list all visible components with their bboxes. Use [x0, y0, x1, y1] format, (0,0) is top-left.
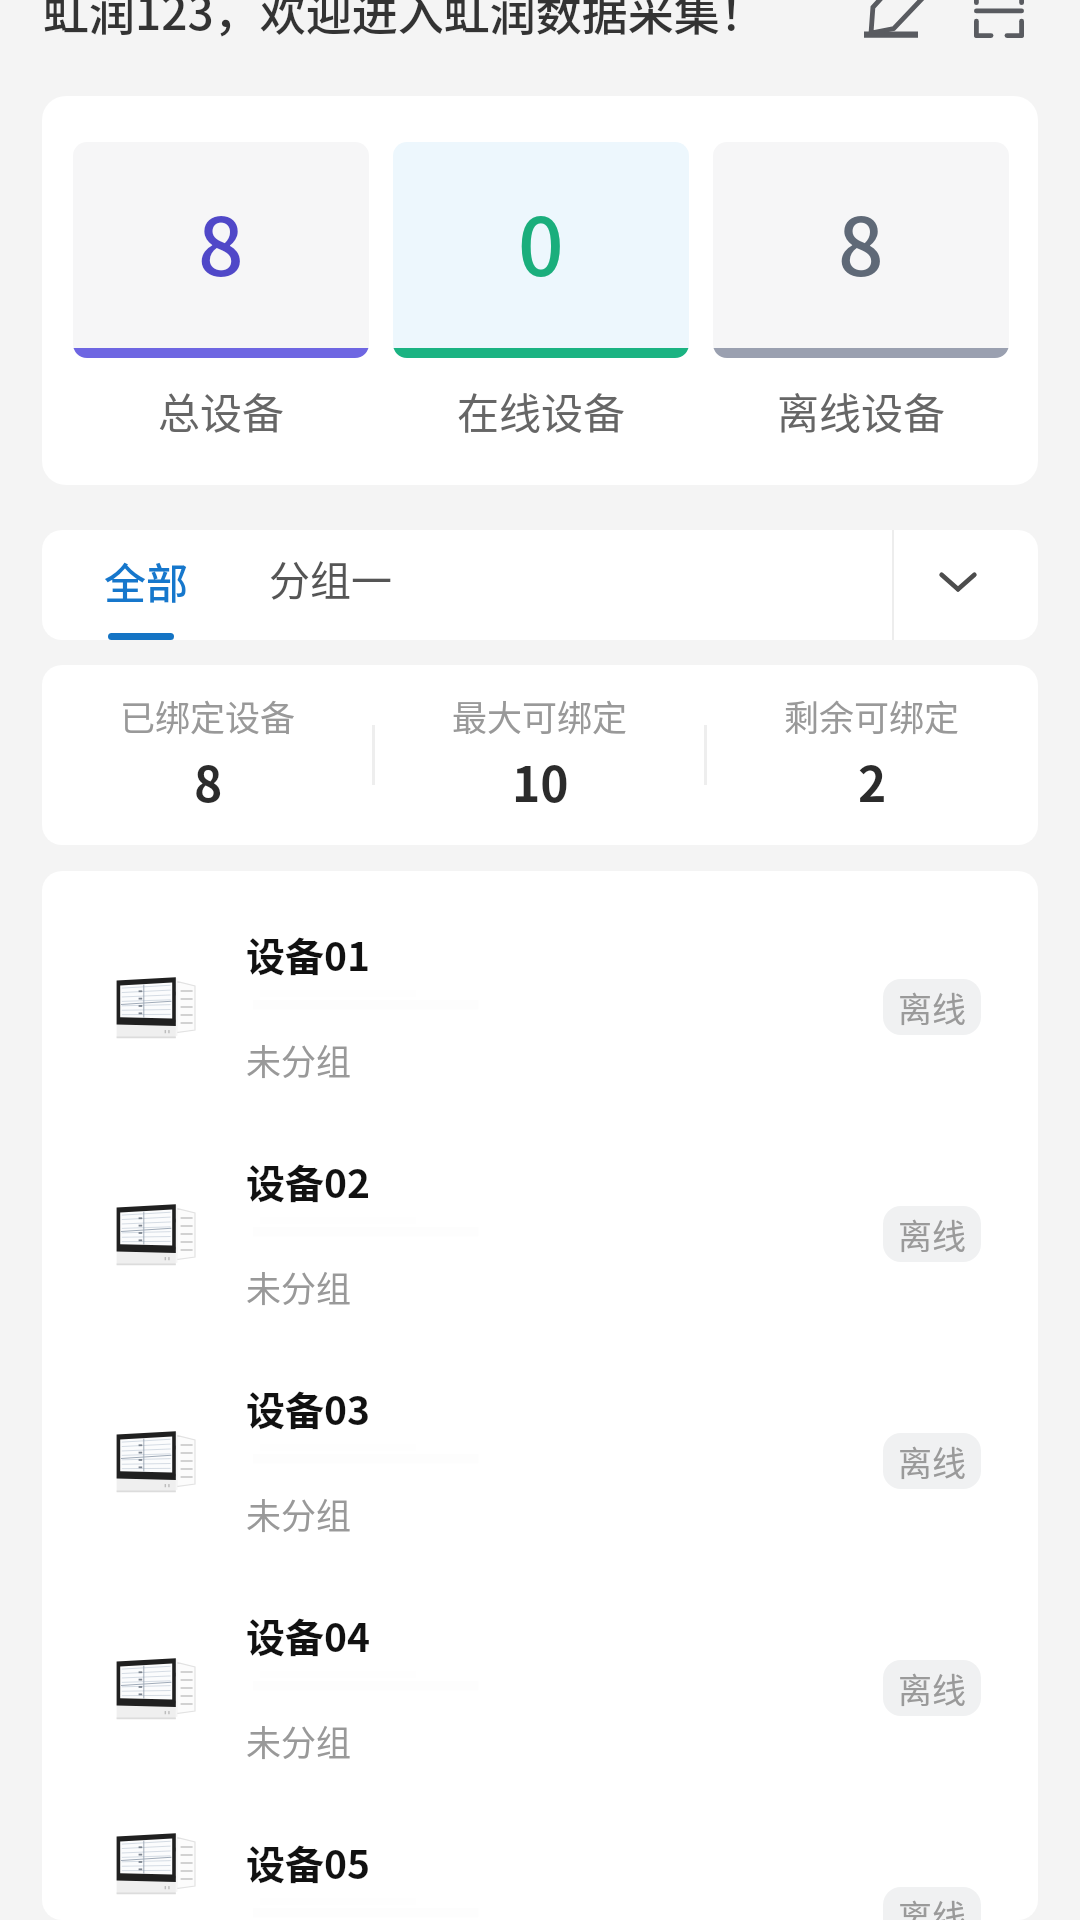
- staticText: 剩余可绑定: [784, 690, 960, 741]
- staticText: 设备04: [246, 1607, 371, 1663]
- button[interactable]: Expand groups: [892, 530, 1038, 640]
- staticText: 8: [838, 183, 884, 299]
- button[interactable]: 最大可绑定: [374, 665, 706, 842]
- staticText: 未分组: [246, 1261, 352, 1312]
- button[interactable]: 全部: [42, 530, 245, 640]
- button[interactable]: 设备02: [42, 1116, 1038, 1343]
- staticText: 离线: [898, 1437, 966, 1486]
- staticText: 8: [198, 183, 244, 299]
- staticText: 离线设备: [777, 380, 946, 441]
- staticText: 10: [512, 746, 569, 816]
- staticText: 虹润123，欢迎进入虹润数据采集！: [43, 0, 766, 44]
- button[interactable]: 8: [73, 142, 369, 441]
- staticText: 全部: [104, 550, 189, 611]
- staticText: 2: [858, 746, 887, 816]
- staticText: 离线: [898, 1891, 966, 1920]
- staticText: 最大可绑定: [452, 690, 628, 741]
- button[interactable]: Edit: [841, 0, 941, 62]
- staticText: 未分组: [246, 1488, 352, 1539]
- staticText: 分组一: [269, 548, 392, 607]
- button[interactable]: Scan: [949, 0, 1049, 65]
- staticText: 设备02: [246, 1153, 371, 1209]
- button[interactable]: 0: [393, 142, 689, 441]
- button[interactable]: 已绑定设备: [42, 665, 374, 842]
- button[interactable]: 设备03: [42, 1343, 1038, 1570]
- staticText: 设备03: [246, 1380, 371, 1436]
- button[interactable]: 设备01: [42, 889, 1038, 1116]
- staticText: 离线: [898, 1210, 966, 1259]
- staticText: 0: [518, 183, 564, 299]
- staticText: 未分组: [246, 1034, 352, 1085]
- button[interactable]: 设备04: [42, 1570, 1038, 1797]
- staticText: 未分组: [246, 1715, 352, 1766]
- button[interactable]: 剩余可绑定: [706, 665, 1038, 842]
- staticText: 设备01: [246, 926, 371, 982]
- button[interactable]: 设备05: [42, 1797, 1038, 1920]
- staticText: 离线: [898, 1664, 966, 1713]
- button[interactable]: 分组一: [245, 530, 450, 640]
- staticText: 已绑定设备: [120, 690, 296, 741]
- staticText: 设备05: [246, 1834, 371, 1890]
- button[interactable]: 8: [713, 142, 1009, 441]
- staticText: 离线: [898, 983, 966, 1032]
- staticText: 在线设备: [457, 380, 626, 441]
- staticText: 总设备: [158, 380, 285, 441]
- staticText: 8: [194, 746, 223, 816]
